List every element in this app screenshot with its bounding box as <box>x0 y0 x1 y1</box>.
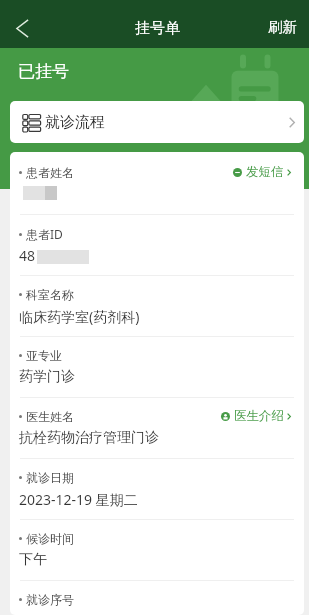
button[interactable]: Back <box>0 2 44 46</box>
staticText: 就诊流程 <box>45 113 105 132</box>
button[interactable]: 医生介绍 <box>217 405 295 427</box>
staticText: 患者姓名 <box>26 165 74 180</box>
staticText: 刷新 <box>268 18 297 36</box>
button[interactable]: 就诊流程 <box>10 101 304 143</box>
staticText: 医生介绍 <box>234 408 284 424</box>
staticText: 亚专业 <box>26 348 62 363</box>
button[interactable]: 刷新 <box>256 10 309 44</box>
staticText: 候诊时间 <box>26 531 74 546</box>
staticText: 医生姓名 <box>26 409 74 424</box>
staticText: 挂号单 <box>135 19 180 38</box>
staticText: 就诊序号 <box>26 592 74 607</box>
button[interactable]: 发短信 <box>229 161 295 183</box>
staticText: 下午 <box>19 551 47 569</box>
staticText: 临床药学室(药剂科) <box>19 307 140 326</box>
staticText: 2023-12-19 星期二 <box>19 490 138 509</box>
staticText: 患者ID <box>26 226 63 242</box>
staticText: 药学门诊 <box>19 368 75 386</box>
staticText: 科室名称 <box>26 287 74 302</box>
staticText: 已挂号 <box>18 61 69 82</box>
staticText: 就诊日期 <box>26 470 74 485</box>
staticText: 发短信 <box>246 164 284 180</box>
staticText: 抗栓药物治疗管理门诊 <box>19 429 159 447</box>
staticText: 48 <box>19 246 36 265</box>
